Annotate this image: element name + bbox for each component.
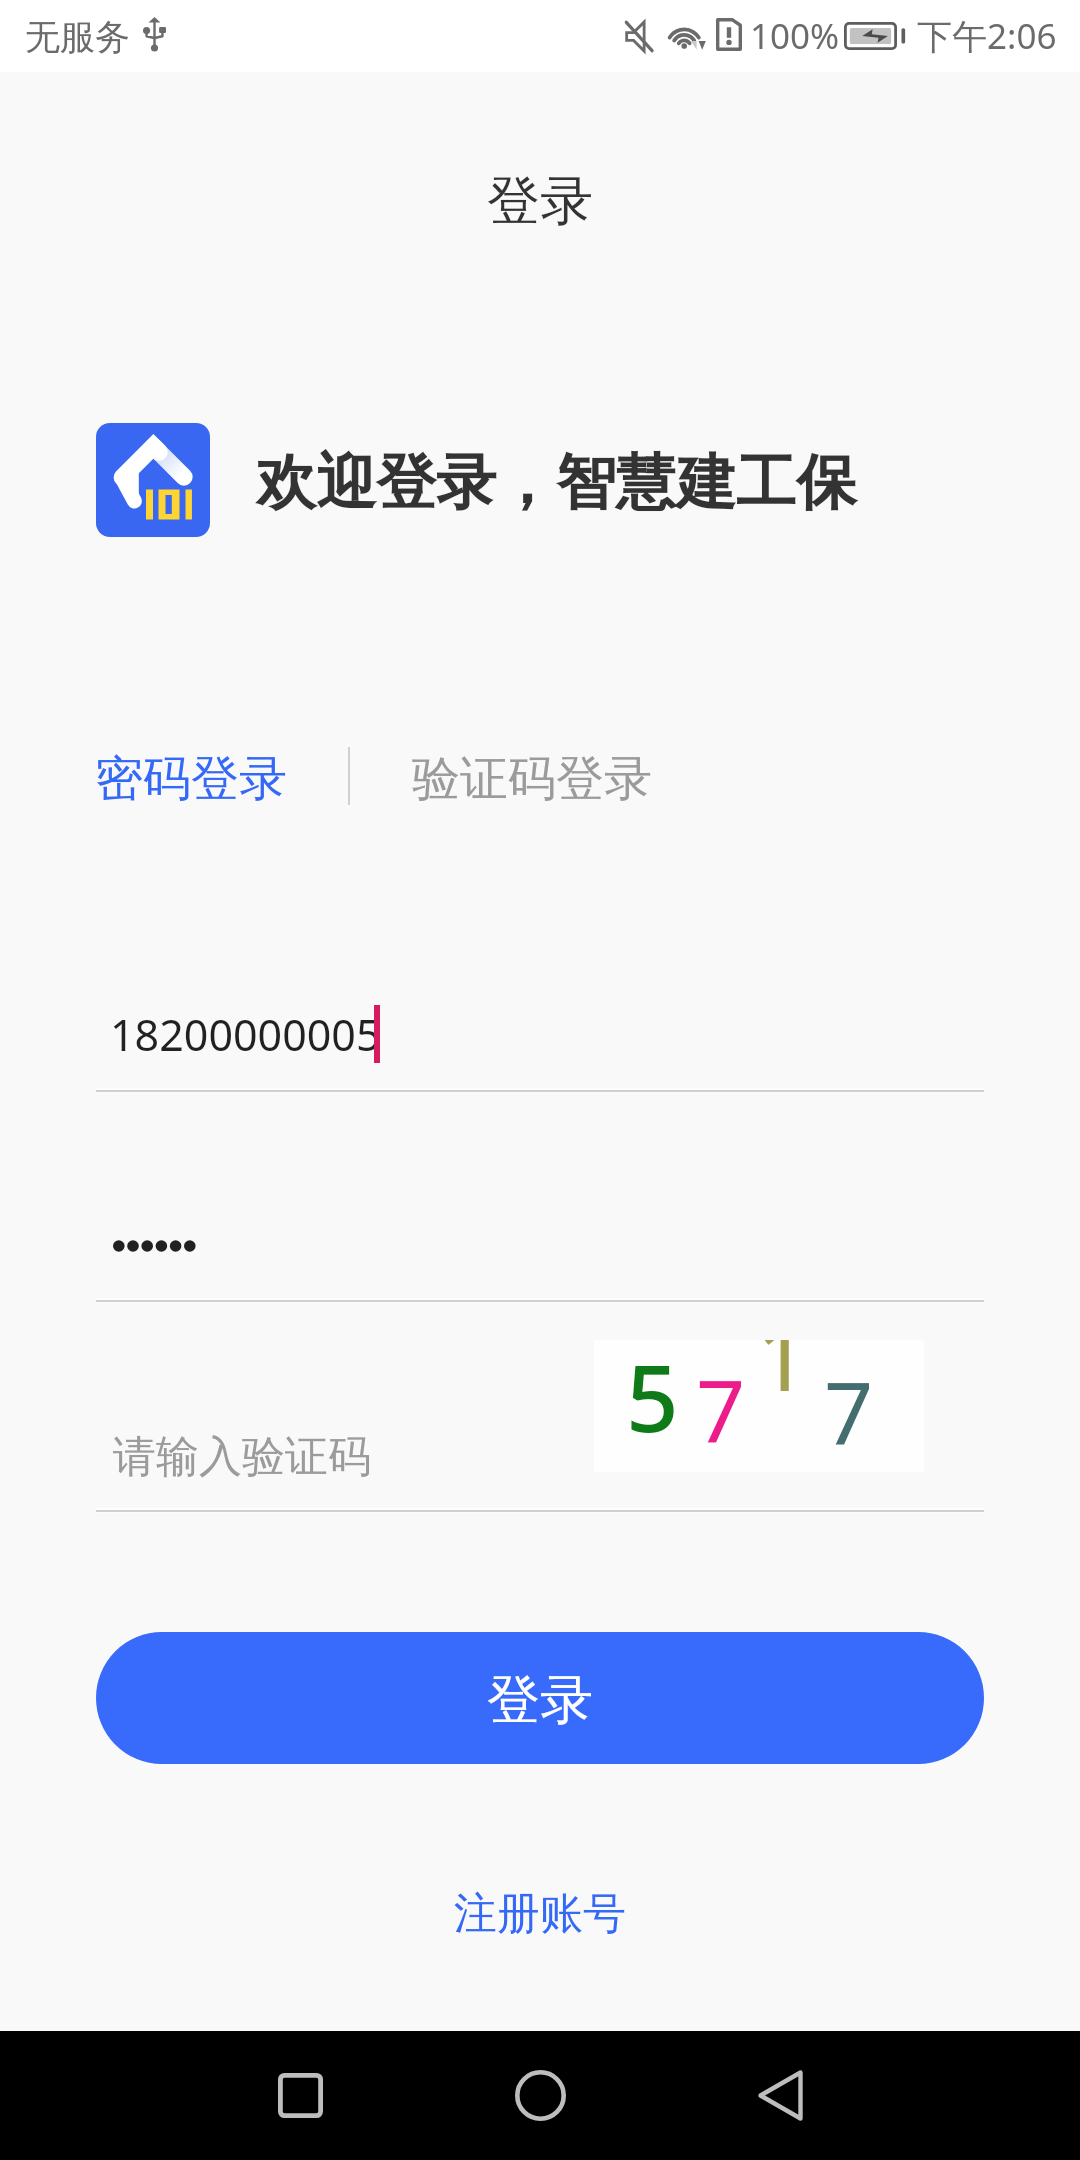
staticText: 18200000005: [110, 1005, 381, 1064]
staticText: 无服务: [25, 15, 130, 59]
button[interactable]: Recents: [240, 2035, 360, 2155]
staticText: 下午2:06: [917, 12, 1057, 60]
button[interactable]: Password: [96, 1192, 984, 1300]
staticText: 请输入验证码: [113, 1430, 371, 1484]
staticText: 登录: [487, 1667, 593, 1734]
button[interactable]: Verification code: [96, 1390, 576, 1510]
staticText: 5: [626, 1340, 679, 1459]
staticText: 1: [756, 1340, 809, 1418]
button[interactable]: 密码登录: [80, 736, 302, 822]
staticText: 7: [824, 1353, 874, 1470]
staticText: 注册账号: [454, 1887, 626, 1941]
button[interactable]: Phone number: [96, 980, 984, 1090]
button[interactable]: Refresh captcha: [594, 1340, 924, 1472]
staticText: 验证码登录: [412, 749, 652, 809]
staticText: 7: [696, 1351, 746, 1468]
staticText: 欢迎登录，智慧建工保: [256, 445, 856, 521]
staticText: 登录: [487, 168, 593, 235]
button[interactable]: 登录: [96, 1632, 984, 1764]
staticText: 100%: [750, 12, 840, 60]
button[interactable]: Back: [720, 2035, 840, 2155]
staticText: 密码登录: [95, 749, 287, 809]
button[interactable]: Home: [480, 2035, 600, 2155]
button[interactable]: 验证码登录: [398, 736, 666, 822]
button[interactable]: 注册账号: [410, 1864, 670, 1964]
